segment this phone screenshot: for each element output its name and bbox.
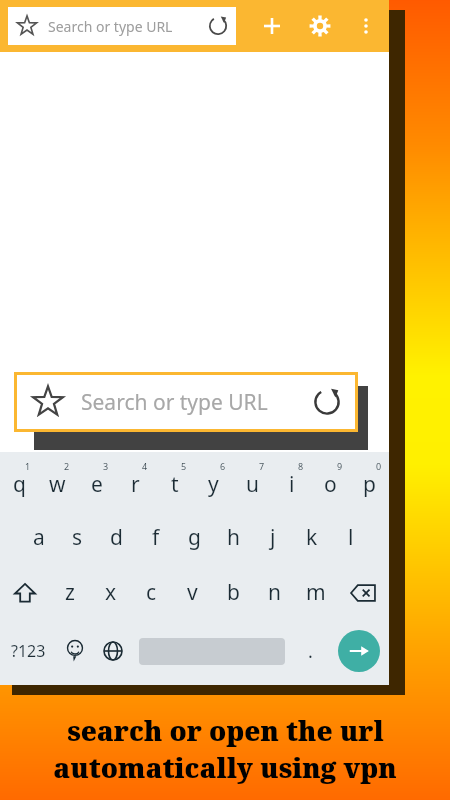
staticText: i bbox=[289, 470, 295, 499]
button[interactable]: c bbox=[131, 565, 172, 620]
staticText: v bbox=[187, 578, 198, 607]
staticText: Search or type URL bbox=[48, 17, 173, 36]
button[interactable]: More options bbox=[351, 11, 381, 41]
button[interactable]: . bbox=[291, 620, 329, 682]
button[interactable]: Settings bbox=[303, 9, 337, 43]
button[interactable]: 0 bbox=[350, 452, 389, 510]
button[interactable]: New tab bbox=[255, 9, 289, 43]
other: Reload bbox=[208, 16, 228, 36]
staticText: b bbox=[227, 578, 240, 607]
button[interactable]: a bbox=[19, 510, 58, 565]
button[interactable]: Backspace bbox=[336, 565, 389, 620]
button[interactable]: d bbox=[97, 510, 136, 565]
button[interactable]: v bbox=[172, 565, 213, 620]
staticText: w bbox=[49, 470, 66, 499]
staticText: j bbox=[270, 523, 276, 552]
button[interactable]: m bbox=[295, 565, 336, 620]
staticText: y bbox=[208, 470, 219, 499]
staticText: 0 bbox=[376, 460, 382, 472]
button[interactable]: 5 bbox=[155, 452, 194, 510]
staticText: 7 bbox=[259, 460, 265, 472]
button[interactable]: 3 bbox=[77, 452, 116, 510]
staticText: u bbox=[246, 470, 259, 499]
staticText: 1 bbox=[25, 460, 31, 472]
staticText: p bbox=[363, 470, 376, 499]
staticText: search or open the url bbox=[67, 712, 384, 749]
button[interactable]: Shift bbox=[0, 565, 49, 620]
button[interactable]: 2 bbox=[38, 452, 77, 510]
staticText: a bbox=[33, 523, 45, 552]
button[interactable]: Enter bbox=[329, 620, 389, 682]
other: Reload bbox=[313, 388, 341, 416]
button[interactable]: z bbox=[49, 565, 90, 620]
staticText: o bbox=[324, 470, 337, 499]
button[interactable]: 1 bbox=[0, 452, 38, 510]
staticText: ?123 bbox=[11, 640, 46, 662]
staticText: f bbox=[152, 523, 160, 552]
staticText: 3 bbox=[103, 460, 109, 472]
button[interactable]: x bbox=[90, 565, 131, 620]
button[interactable]: Emoji bbox=[56, 620, 94, 682]
staticText: n bbox=[268, 578, 281, 607]
staticText: blank page bbox=[162, 408, 241, 428]
button[interactable]: f bbox=[136, 510, 175, 565]
staticText: s bbox=[72, 523, 83, 552]
staticText: r bbox=[131, 470, 140, 499]
staticText: 8 bbox=[298, 460, 304, 472]
other: Bookmark bbox=[31, 385, 65, 419]
button[interactable]: g bbox=[175, 510, 214, 565]
button[interactable]: j bbox=[253, 510, 292, 565]
staticText: automatically using vpn bbox=[53, 749, 397, 786]
staticText: t bbox=[171, 470, 179, 499]
button[interactable]: Space bbox=[132, 620, 291, 682]
staticText: . bbox=[308, 639, 313, 664]
button[interactable]: Bookmark bbox=[8, 7, 236, 45]
button[interactable]: 6 bbox=[194, 452, 233, 510]
staticText: g bbox=[188, 523, 201, 552]
button[interactable]: 8 bbox=[272, 452, 311, 510]
staticText: c bbox=[146, 578, 157, 607]
staticText: h bbox=[227, 523, 240, 552]
staticText: d bbox=[110, 523, 123, 552]
button[interactable]: Bookmark bbox=[17, 375, 355, 429]
button[interactable]: 9 bbox=[311, 452, 350, 510]
staticText: l bbox=[348, 523, 354, 552]
other: Bookmark bbox=[16, 15, 38, 37]
button[interactable]: h bbox=[214, 510, 253, 565]
staticText: 2 bbox=[64, 460, 70, 472]
button[interactable]: k bbox=[292, 510, 331, 565]
staticText: 6 bbox=[220, 460, 226, 472]
button[interactable]: n bbox=[254, 565, 295, 620]
staticText: e bbox=[91, 470, 103, 499]
staticText: x bbox=[105, 578, 117, 607]
button[interactable]: s bbox=[58, 510, 97, 565]
staticText: 4 bbox=[142, 460, 148, 472]
button[interactable]: Change language bbox=[94, 620, 132, 682]
staticText: z bbox=[65, 578, 75, 607]
staticText: q bbox=[13, 470, 26, 499]
staticText: 5 bbox=[181, 460, 187, 472]
button[interactable]: b bbox=[213, 565, 254, 620]
staticText: 9 bbox=[337, 460, 343, 472]
button[interactable]: 7 bbox=[233, 452, 272, 510]
staticText: k bbox=[306, 523, 318, 552]
staticText: Search or type URL bbox=[81, 388, 268, 417]
button[interactable]: l bbox=[331, 510, 370, 565]
button[interactable]: ?123 bbox=[0, 620, 56, 682]
staticText: m bbox=[306, 578, 326, 607]
button[interactable]: 4 bbox=[116, 452, 155, 510]
